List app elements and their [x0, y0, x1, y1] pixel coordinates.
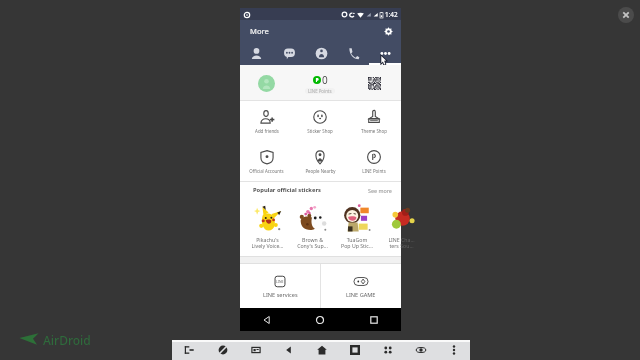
staticText: LINE services — [263, 291, 298, 299]
button[interactable]: 0 — [293, 67, 347, 100]
button[interactable]: Apps — [371, 340, 404, 360]
button[interactable]: Keyboard — [239, 340, 272, 360]
button[interactable]: Brown & Cony's Sup... — [290, 198, 335, 250]
button[interactable]: Settings — [381, 24, 395, 38]
button[interactable]: Back — [240, 308, 293, 331]
button[interactable]: LINE Cha... ters Sou... — [379, 198, 424, 250]
button[interactable]: Friends — [240, 42, 273, 65]
button[interactable]: Disconnect — [172, 340, 206, 360]
staticText: Popular official stickers — [253, 186, 321, 194]
button[interactable]: Zoom — [404, 340, 437, 360]
button[interactable]: Profile — [240, 67, 293, 100]
staticText: 1:42 — [385, 10, 398, 19]
button[interactable]: TuaGom Pop Up Stic... — [334, 198, 379, 250]
button[interactable]: LINE — [240, 264, 320, 308]
staticText: More — [250, 26, 269, 36]
button[interactable]: Theme Shop — [347, 101, 401, 141]
button[interactable]: See more — [368, 187, 392, 194]
staticText: Pikachu's Lively Voice... — [251, 236, 284, 250]
button[interactable]: Recents — [338, 340, 371, 360]
button[interactable]: Sticker Shop — [293, 101, 347, 141]
button[interactable]: Close — [618, 7, 634, 23]
button[interactable]: People Nearby — [293, 141, 347, 181]
button[interactable]: Timeline — [305, 42, 337, 65]
staticText: Add friends — [255, 128, 279, 134]
staticText: Brown & Cony's Sup... — [297, 236, 328, 250]
staticText: TuaGom Pop Up Stic... — [341, 236, 373, 250]
staticText: Sticker Shop — [307, 128, 333, 134]
staticText: 0 — [322, 73, 328, 87]
staticText: Official Accounts — [249, 168, 284, 174]
staticText: LINE Points — [308, 88, 332, 94]
button[interactable]: Home — [293, 308, 347, 331]
staticText: People Nearby — [305, 168, 336, 174]
button[interactable]: Recents — [347, 308, 401, 331]
button[interactable]: Pikachu's Lively Voice... — [245, 198, 290, 250]
button[interactable]: Screenshot — [206, 340, 239, 360]
button[interactable]: More — [369, 42, 401, 65]
button[interactable]: LINE GAME — [321, 264, 401, 308]
staticText: LINE — [276, 279, 284, 284]
button[interactable]: More — [437, 340, 470, 360]
button[interactable]: Back — [272, 340, 305, 360]
button[interactable]: Calls — [337, 42, 369, 65]
button[interactable]: Official Accounts — [240, 141, 293, 181]
button[interactable]: Add friends — [240, 101, 293, 141]
staticText: LINE Cha... ters Sou... — [388, 236, 415, 250]
staticText: AirDroid — [43, 332, 91, 346]
staticText: Theme Shop — [361, 128, 387, 134]
button[interactable]: Chats — [273, 42, 305, 65]
staticText: LINE GAME — [346, 291, 376, 299]
button[interactable]: LINE Points — [347, 141, 401, 181]
button[interactable]: QR code — [347, 67, 401, 100]
staticText: See more — [368, 187, 392, 194]
staticText: LINE Points — [362, 168, 386, 174]
button[interactable]: Home — [305, 340, 338, 360]
